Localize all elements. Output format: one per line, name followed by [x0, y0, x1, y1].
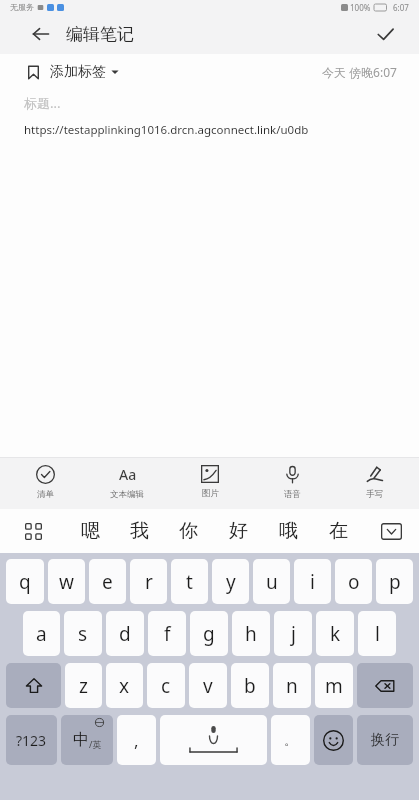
- staticText: 我: [130, 519, 149, 543]
- button[interactable]: Back: [26, 19, 56, 49]
- staticText: f: [164, 621, 171, 647]
- staticText: Aa: [119, 465, 137, 484]
- button[interactable]: b: [231, 663, 269, 708]
- staticText: 图片: [202, 488, 219, 499]
- button[interactable]: 你: [164, 509, 213, 553]
- button[interactable]: p: [376, 559, 413, 604]
- staticText: 在: [329, 519, 348, 543]
- staticText: w: [59, 569, 74, 595]
- button[interactable]: x: [106, 663, 143, 708]
- button[interactable]: t: [171, 559, 208, 604]
- staticText: e: [102, 569, 113, 595]
- button[interactable]: a: [23, 611, 60, 656]
- staticText: q: [19, 569, 31, 595]
- button[interactable]: q: [6, 559, 44, 604]
- staticText: 换行: [371, 731, 399, 749]
- staticText: a: [36, 621, 47, 647]
- button[interactable]: s: [64, 611, 102, 656]
- button[interactable]: ?123: [6, 715, 57, 765]
- staticText: n: [286, 673, 298, 699]
- staticText: c: [161, 673, 171, 699]
- button[interactable]: w: [48, 559, 85, 604]
- staticText: 嗯: [81, 519, 100, 543]
- staticText: /英: [89, 738, 102, 750]
- button[interactable]: 图片: [173, 458, 247, 509]
- button[interactable]: 好: [213, 509, 263, 553]
- button[interactable]: i: [294, 559, 331, 604]
- button[interactable]: Collapse: [363, 509, 419, 553]
- button[interactable]: 语音: [255, 458, 329, 509]
- button[interactable]: j: [274, 611, 312, 656]
- staticText: v: [203, 673, 213, 699]
- staticText: 哦: [279, 519, 298, 543]
- button[interactable]: h: [232, 611, 270, 656]
- button[interactable]: m: [315, 663, 353, 708]
- button[interactable]: 换行: [357, 715, 413, 765]
- button[interactable]: r: [130, 559, 167, 604]
- staticText: ,: [134, 729, 139, 752]
- staticText: h: [245, 621, 257, 647]
- staticText: g: [203, 621, 215, 647]
- staticText: p: [389, 569, 401, 595]
- button[interactable]: Backspace: [357, 663, 413, 708]
- button[interactable]: z: [65, 663, 102, 708]
- staticText: https://testapplinking1016.drcn.agconnec…: [24, 122, 309, 138]
- button[interactable]: l: [358, 611, 396, 656]
- staticText: z: [79, 673, 88, 699]
- staticText: 你: [179, 519, 198, 543]
- staticText: 中: [73, 730, 89, 750]
- staticText: 好: [229, 519, 248, 543]
- button[interactable]: n: [273, 663, 311, 708]
- staticText: u: [266, 569, 278, 595]
- button[interactable]: f: [148, 611, 186, 656]
- staticText: 手写: [366, 489, 383, 500]
- button[interactable]: 。: [271, 715, 310, 765]
- staticText: 编辑笔记: [66, 24, 134, 45]
- button[interactable]: 嗯: [66, 509, 115, 553]
- staticText: 无服务: [10, 2, 34, 12]
- staticText: 今天 傍晚6:07: [322, 64, 397, 80]
- button[interactable]: 手写: [337, 458, 411, 509]
- button[interactable]: Aa: [90, 458, 164, 509]
- staticText: b: [244, 673, 256, 699]
- staticText: t: [186, 569, 193, 595]
- button[interactable]: d: [106, 611, 144, 656]
- button[interactable]: k: [316, 611, 354, 656]
- staticText: k: [330, 621, 341, 647]
- button[interactable]: 清单: [8, 458, 82, 509]
- staticText: 添加标签: [50, 63, 106, 81]
- button[interactable]: Keyboard menu: [0, 509, 66, 553]
- staticText: r: [145, 569, 153, 595]
- staticText: i: [310, 569, 315, 595]
- button[interactable]: g: [190, 611, 228, 656]
- staticText: o: [348, 569, 360, 595]
- staticText: ?123: [16, 731, 47, 750]
- button[interactable]: Save: [369, 18, 401, 50]
- staticText: 标题...: [24, 94, 61, 112]
- staticText: m: [325, 673, 343, 699]
- button[interactable]: Emoji: [314, 715, 353, 765]
- button[interactable]: Shift: [6, 663, 61, 708]
- button[interactable]: v: [189, 663, 227, 708]
- button[interactable]: ,: [117, 715, 156, 765]
- button[interactable]: c: [147, 663, 185, 708]
- button[interactable]: 在: [313, 509, 363, 553]
- button[interactable]: 我: [115, 509, 164, 553]
- staticText: x: [119, 673, 130, 699]
- button[interactable]: o: [335, 559, 372, 604]
- staticText: 文本编辑: [110, 489, 144, 500]
- staticText: d: [119, 621, 131, 647]
- button[interactable]: e: [89, 559, 126, 604]
- button[interactable]: 哦: [263, 509, 313, 553]
- staticText: 6:07: [393, 2, 409, 13]
- staticText: l: [375, 621, 380, 647]
- button[interactable]: Language: [61, 715, 113, 765]
- staticText: 100%: [350, 2, 371, 13]
- staticText: y: [226, 569, 236, 595]
- staticText: 。: [284, 732, 297, 748]
- button[interactable]: u: [253, 559, 290, 604]
- button[interactable]: y: [212, 559, 249, 604]
- button[interactable]: 添加标签: [22, 59, 123, 85]
- button[interactable]: Space: [160, 715, 267, 765]
- staticText: j: [291, 621, 296, 647]
